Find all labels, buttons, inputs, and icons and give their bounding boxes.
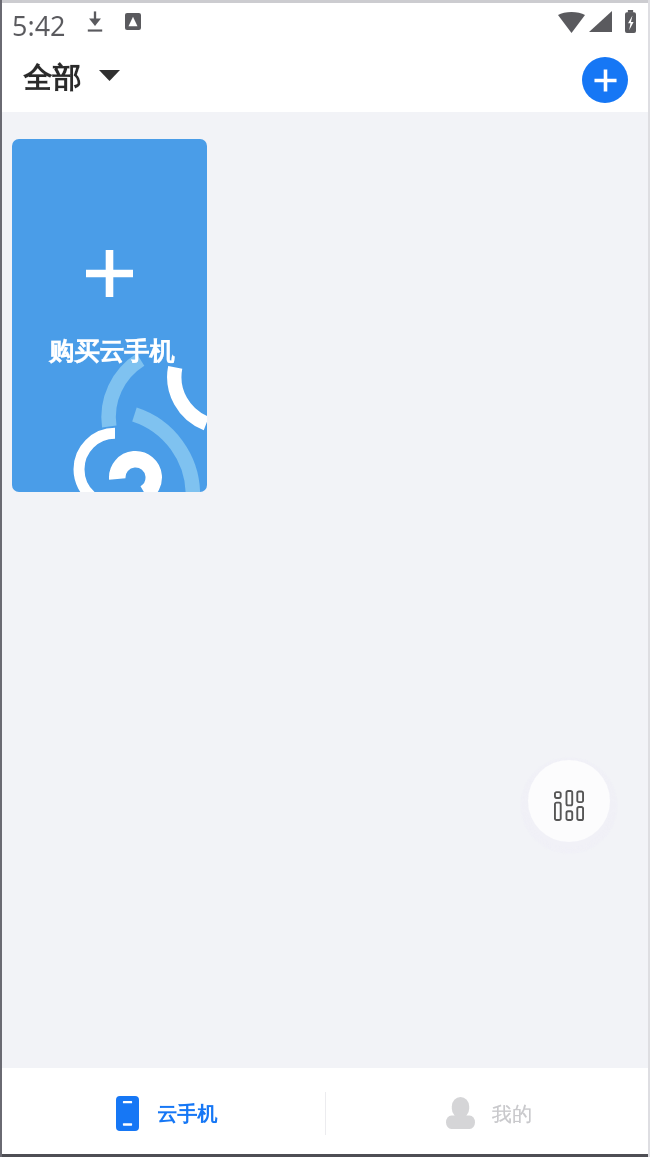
button[interactable]: 云手机: [4, 1068, 329, 1154]
staticText: 购买云手机: [49, 336, 174, 367]
button[interactable]: Layout options: [528, 760, 610, 842]
button[interactable]: Add cloud phone: [582, 57, 628, 103]
staticText: 全部: [23, 60, 81, 97]
staticText: 我的: [492, 1102, 532, 1127]
button[interactable]: 购买云手机: [12, 139, 207, 492]
button[interactable]: 全部: [14, 53, 129, 108]
staticText: 云手机: [157, 1102, 217, 1127]
staticText: 5:42: [12, 7, 66, 44]
button[interactable]: 我的: [328, 1068, 650, 1154]
